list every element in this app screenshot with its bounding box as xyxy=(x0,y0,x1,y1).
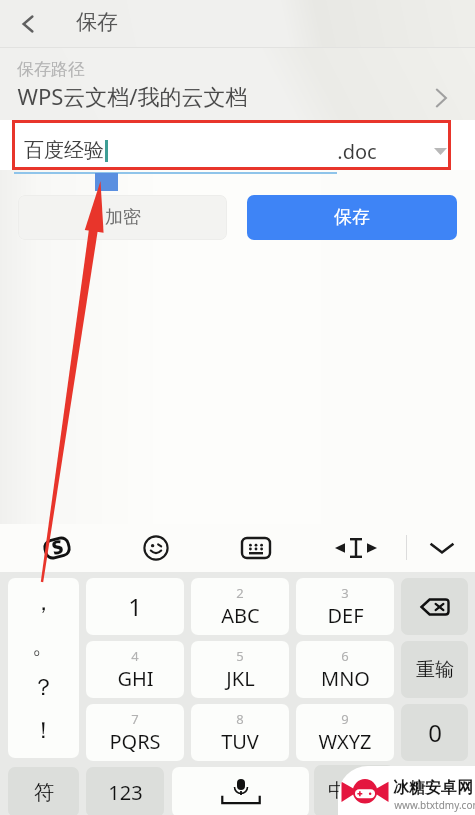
button[interactable]: 6 xyxy=(296,641,394,698)
staticText: www.btxtdmy.com xyxy=(394,798,475,812)
button[interactable]: 加密 xyxy=(18,195,227,240)
button[interactable]: 1 xyxy=(86,578,184,635)
button[interactable] xyxy=(0,48,475,120)
staticText: ABC xyxy=(221,602,260,629)
staticText: ？ xyxy=(32,673,55,702)
staticText: 7 xyxy=(131,710,139,728)
staticText: PQRS xyxy=(109,728,161,755)
staticText: 百度经验 xyxy=(24,138,104,163)
button[interactable]: 9 xyxy=(296,704,394,761)
staticText: .doc xyxy=(337,138,377,165)
button[interactable]: 中 xyxy=(314,765,394,815)
button[interactable]: 0 xyxy=(401,704,468,761)
other: Backspace xyxy=(401,578,468,635)
button[interactable]: Back xyxy=(6,2,50,46)
button[interactable]: Space xyxy=(172,767,309,815)
staticText: 4 xyxy=(131,647,139,665)
staticText: 0 xyxy=(428,716,442,749)
button[interactable]: 保存 xyxy=(247,195,457,240)
button[interactable]: Sogou input xyxy=(33,524,81,572)
staticText: GHI xyxy=(117,665,154,692)
staticText: 中 xyxy=(328,779,347,803)
staticText: TUV xyxy=(221,728,259,755)
button[interactable]: 8 xyxy=(191,704,289,761)
staticText: 加密 xyxy=(105,206,141,229)
staticText: WPS云文档/我的云文档 xyxy=(17,81,248,111)
staticText: 5 xyxy=(236,647,244,665)
button[interactable]: 7 xyxy=(86,704,184,761)
staticText: 保存 xyxy=(334,206,370,229)
staticText: 保存路径 xyxy=(17,59,85,80)
button[interactable]: 4 xyxy=(86,641,184,698)
staticText: 1 xyxy=(128,590,142,623)
button[interactable]: 123 xyxy=(86,767,164,815)
staticText: 保存 xyxy=(76,9,118,35)
button[interactable]: Emoji xyxy=(132,524,180,572)
staticText: WXYZ xyxy=(318,728,372,755)
staticText: 重输 xyxy=(416,658,454,682)
button[interactable] xyxy=(0,120,475,170)
button[interactable]: 5 xyxy=(191,641,289,698)
staticText: 符 xyxy=(34,780,54,805)
staticText: S xyxy=(49,533,66,561)
button[interactable]: Keyboard layout xyxy=(232,524,280,572)
button[interactable] xyxy=(401,767,468,815)
button[interactable]: 2 xyxy=(191,578,289,635)
staticText: 8 xyxy=(236,710,244,728)
staticText: 2 xyxy=(236,584,244,602)
staticText: JKL xyxy=(226,665,255,692)
button[interactable]: ， xyxy=(8,578,79,758)
other: Space xyxy=(172,767,309,815)
staticText: MNO xyxy=(321,665,370,692)
staticText: 冰糖安卓网 xyxy=(393,778,473,798)
button[interactable]: 符 xyxy=(8,767,79,815)
button[interactable]: Hide keyboard xyxy=(418,524,466,572)
staticText: ， xyxy=(32,588,55,617)
staticText: 。 xyxy=(32,631,55,660)
button[interactable]: Backspace xyxy=(401,578,468,635)
button[interactable]: 3 xyxy=(296,578,394,635)
staticText: 3 xyxy=(341,584,349,602)
staticText: 6 xyxy=(341,647,349,665)
staticText: 9 xyxy=(341,710,349,728)
button[interactable]: Move cursor xyxy=(332,524,380,572)
button[interactable]: 重输 xyxy=(401,641,468,698)
staticText: DEF xyxy=(327,602,364,629)
staticText: 123 xyxy=(108,779,143,806)
staticText: ！ xyxy=(32,716,55,745)
